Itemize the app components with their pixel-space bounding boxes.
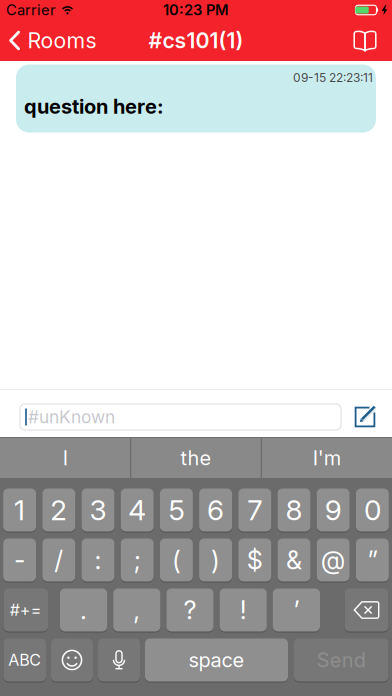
staticText: 1 [14, 493, 25, 526]
button[interactable]: : [82, 538, 114, 582]
staticText: ) [211, 545, 220, 575]
staticText: , [133, 595, 140, 625]
staticText: Carrier [6, 1, 56, 19]
staticText: 5 [168, 493, 184, 526]
staticText: : [94, 545, 101, 575]
staticText: @ [321, 545, 346, 575]
button[interactable]: ’ [273, 588, 320, 632]
staticText: #unKnown [28, 407, 115, 427]
staticText: ( [172, 545, 181, 575]
button[interactable]: #+= [3, 588, 48, 632]
staticText: 4 [128, 493, 146, 526]
staticText: ? [183, 595, 196, 625]
button[interactable]: space [145, 638, 288, 682]
button[interactable]: I [1, 438, 130, 478]
button[interactable]: 6 [199, 488, 232, 532]
staticText: ABC [8, 651, 41, 669]
button[interactable]: ! [220, 588, 267, 632]
button[interactable]: Rooms [0, 28, 96, 53]
button[interactable]: I'm [262, 438, 391, 478]
button[interactable]: , [113, 588, 160, 632]
button[interactable]: ” [356, 538, 389, 582]
button[interactable]: ? [166, 588, 214, 632]
button[interactable]: 9 [317, 488, 350, 532]
button[interactable]: 4 [121, 488, 154, 532]
button[interactable]: @ [317, 538, 350, 582]
staticText: Send [317, 648, 366, 672]
staticText: 09-15 22:23:11 [293, 70, 373, 85]
button[interactable]: 5 [160, 488, 193, 532]
button[interactable]: Compose [354, 405, 392, 429]
staticText: ! [240, 595, 247, 625]
button[interactable]: 2 [42, 488, 75, 532]
staticText: 6 [207, 493, 224, 526]
staticText: 9 [325, 493, 342, 526]
staticText: 3 [89, 493, 106, 526]
button[interactable]: ( [160, 538, 193, 582]
button[interactable]: 8 [278, 488, 310, 532]
staticText: $ [247, 545, 263, 575]
button[interactable]: 7 [238, 488, 271, 532]
button[interactable]: Send [294, 638, 388, 682]
staticText: / [54, 545, 63, 575]
button[interactable]: ) [199, 538, 232, 582]
staticText: 0 [364, 493, 381, 526]
staticText: #cs101(1) [148, 28, 243, 53]
staticText: ; [134, 545, 141, 575]
staticText: ” [367, 545, 377, 575]
button[interactable]: ; [121, 538, 154, 582]
staticText: #+= [10, 601, 42, 619]
button[interactable]: Dictate [98, 638, 140, 682]
button[interactable]: Bookmarks [352, 29, 392, 51]
button[interactable]: Delete [344, 588, 388, 632]
button[interactable]: $ [238, 538, 271, 582]
staticText: 7 [247, 493, 262, 526]
button[interactable]: ABC [3, 638, 46, 682]
button[interactable]: & [278, 538, 310, 582]
staticText: I'm [313, 446, 341, 470]
button[interactable]: / [42, 538, 75, 582]
staticText: ’ [293, 595, 299, 625]
staticText: space [188, 648, 244, 672]
button[interactable]: 0 [356, 488, 389, 532]
button[interactable]: . [60, 588, 107, 632]
staticText: Rooms [27, 28, 96, 53]
staticText: question here: [24, 95, 164, 118]
staticText: 2 [50, 493, 67, 526]
button[interactable]: Emoji [51, 638, 93, 682]
staticText: & [286, 545, 302, 575]
staticText: the [180, 446, 211, 470]
button[interactable]: the [131, 438, 261, 478]
staticText: 8 [285, 493, 302, 526]
staticText: - [14, 545, 25, 575]
staticText: I [63, 446, 68, 470]
staticText: 10:23 PM [163, 1, 229, 19]
button[interactable]: - [3, 538, 36, 582]
button[interactable]: 3 [82, 488, 114, 532]
staticText: . [80, 595, 87, 625]
button[interactable]: 1 [3, 488, 36, 532]
